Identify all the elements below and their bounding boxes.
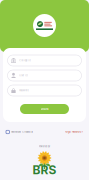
staticText: Password bbox=[19, 89, 28, 92]
staticText: Powered By bbox=[39, 145, 50, 148]
staticText: User ID bbox=[19, 74, 28, 77]
button[interactable]: LOGIN bbox=[20, 104, 69, 114]
button[interactable]: Forgot Password ? bbox=[65, 131, 89, 133]
button[interactable]: Remember Credential bbox=[0, 130, 33, 134]
staticText: Forgot Password ? bbox=[65, 131, 83, 133]
staticText: BRS bbox=[32, 163, 56, 177]
staticText: College Id bbox=[19, 59, 30, 62]
staticText: LOGIN bbox=[40, 107, 48, 111]
staticText: Remember Credential bbox=[11, 131, 33, 133]
